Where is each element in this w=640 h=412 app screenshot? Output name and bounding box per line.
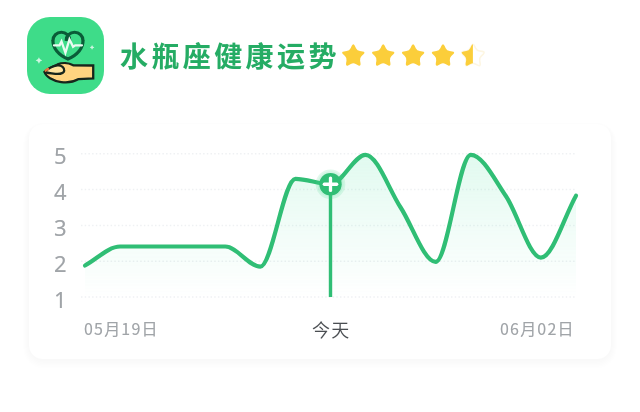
staticText: 2	[54, 248, 67, 278]
staticText: 05月19日	[84, 316, 159, 339]
staticText: 4	[54, 176, 67, 206]
staticText: 3	[54, 212, 67, 242]
staticText: 水瓶座健康运势	[120, 35, 340, 76]
staticText: 1	[54, 284, 67, 314]
staticText: 今天	[312, 316, 351, 342]
staticText: 06月02日	[500, 316, 575, 339]
button[interactable]: 5	[29, 124, 611, 359]
button[interactable]: 水瓶座健康运势	[27, 17, 104, 94]
staticText: 5	[54, 140, 67, 170]
